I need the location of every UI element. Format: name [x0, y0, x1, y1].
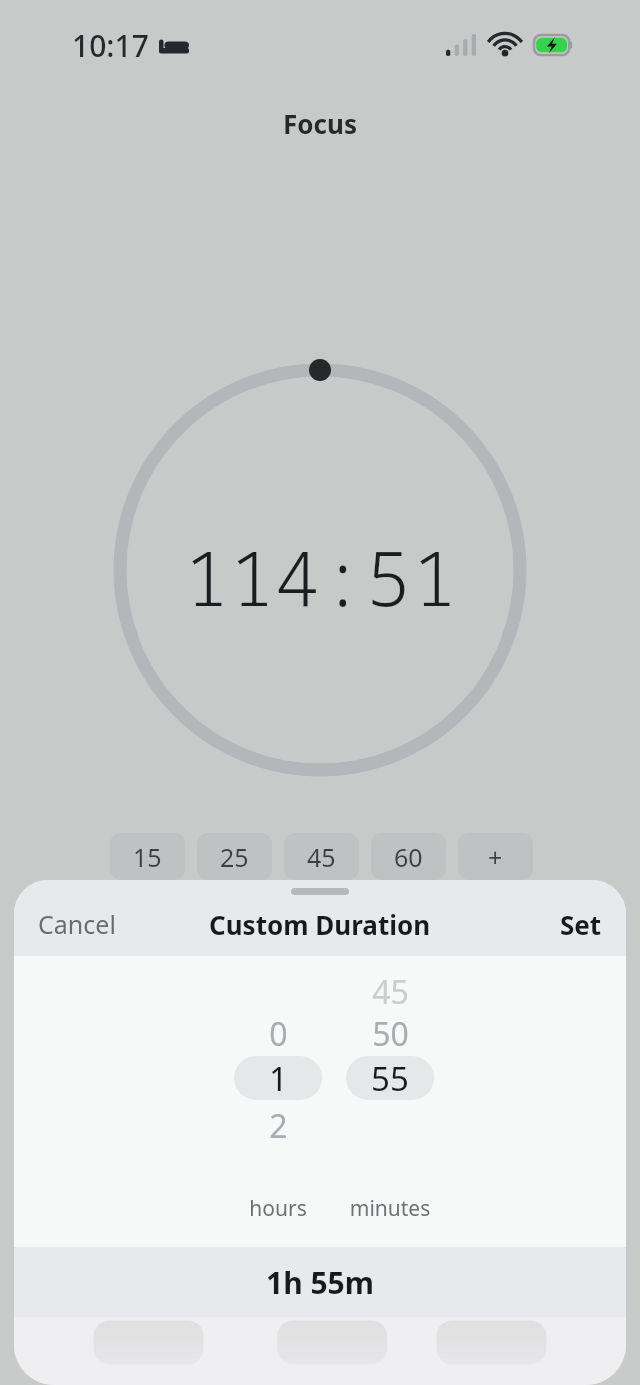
other: Drag handle: [291, 888, 349, 895]
button[interactable]: 25: [197, 833, 272, 880]
staticText: 45: [307, 840, 336, 874]
button[interactable]: 1: [234, 1056, 322, 1100]
button[interactable]: 60: [371, 833, 446, 880]
staticText: Cancel: [38, 907, 116, 941]
staticText: 1: [269, 1056, 288, 1100]
button[interactable]: Set: [536, 899, 626, 950]
staticText: 50: [372, 1012, 409, 1056]
staticText: Focus: [283, 106, 357, 141]
staticText: 0: [269, 1012, 288, 1056]
staticText: 2: [269, 1104, 288, 1148]
button[interactable]: 15: [110, 833, 185, 880]
staticText: 15: [133, 840, 162, 874]
staticText: 45: [372, 970, 409, 1014]
button[interactable]: Cancel: [14, 899, 140, 949]
button[interactable]: 45: [284, 833, 359, 880]
button[interactable]: +: [458, 833, 533, 880]
staticText: hours: [214, 1194, 342, 1223]
staticText: Custom Duration: [209, 907, 431, 942]
button[interactable]: 55: [346, 1056, 434, 1100]
staticText: 10:17: [72, 25, 149, 66]
staticText: 114:51: [183, 525, 457, 629]
staticText: Set: [560, 907, 602, 942]
staticText: 60: [394, 840, 423, 874]
staticText: 1h 55m: [266, 1262, 375, 1303]
staticText: 55: [371, 1056, 409, 1100]
staticText: 25: [220, 840, 249, 874]
staticText: +: [488, 840, 503, 874]
staticText: minutes: [326, 1194, 454, 1223]
